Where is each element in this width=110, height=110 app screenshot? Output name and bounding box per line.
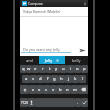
staticText: belly: [72, 58, 81, 63]
button[interactable]: Send: [76, 44, 88, 56]
button[interactable]: m: [71, 85, 78, 94]
button[interactable]: .: [75, 98, 81, 107]
staticText: Jelly: [45, 58, 53, 63]
button[interactable]: h: [58, 75, 65, 83]
button[interactable]: w: [26, 65, 32, 73]
button[interactable]: b: [57, 85, 64, 94]
button[interactable]: l: [79, 75, 86, 83]
button[interactable]: ?123: [20, 98, 28, 107]
staticText: and: [26, 58, 33, 63]
staticText: q: [22, 66, 25, 72]
staticText: n: [66, 87, 69, 93]
staticText: .: [77, 100, 79, 106]
staticText: r: [42, 66, 44, 72]
staticText: c: [45, 87, 48, 93]
staticText: v: [52, 87, 55, 93]
button[interactable]: c: [43, 85, 50, 94]
button[interactable]: j: [65, 75, 72, 83]
button[interactable]: and: [20, 56, 39, 64]
staticText: Vidya Ramesh (Mobile): [23, 9, 61, 14]
staticText: ?123: [21, 101, 28, 105]
staticText: e: [34, 66, 37, 72]
staticText: k: [74, 76, 77, 82]
staticText: y: [55, 66, 58, 72]
staticText: Compose: [28, 1, 44, 6]
button[interactable]: k: [72, 75, 79, 83]
staticText: a: [25, 76, 28, 82]
staticText: h: [60, 76, 63, 82]
staticText: b: [59, 87, 62, 93]
staticText: i: [70, 66, 72, 72]
staticText: z: [32, 87, 34, 93]
button[interactable]: a: [22, 75, 30, 83]
button[interactable]: s: [30, 75, 37, 83]
staticText: p: [83, 66, 86, 72]
staticText: s: [32, 76, 35, 82]
staticText: t: [49, 66, 51, 72]
staticText: m: [73, 87, 77, 93]
staticText: w: [27, 66, 31, 72]
button[interactable]: z: [29, 85, 36, 94]
staticText: g: [53, 76, 56, 82]
button[interactable]: Jelly: [39, 56, 65, 64]
staticText: l: [82, 76, 84, 82]
button[interactable]: Enter: [81, 98, 88, 107]
button[interactable]: v: [50, 85, 57, 94]
button[interactable]: Backspace: [78, 85, 88, 94]
staticText: j: [68, 76, 70, 82]
button[interactable]: d: [37, 75, 44, 83]
button[interactable]: t: [46, 65, 53, 73]
button[interactable]: e: [32, 65, 39, 73]
staticText: x: [38, 87, 41, 93]
button[interactable]: o: [74, 65, 81, 73]
button[interactable]: y: [53, 65, 60, 73]
button[interactable]: i: [67, 65, 74, 73]
staticText: Do you want any Jelly: [23, 47, 60, 52]
button[interactable]: n: [64, 85, 71, 94]
button[interactable]: Voice input: [28, 98, 35, 107]
staticText: f: [47, 76, 49, 82]
button[interactable]: belly: [65, 56, 88, 64]
button[interactable]: More options: [82, 0, 87, 7]
button[interactable]: r: [39, 65, 46, 73]
staticText: o: [76, 66, 79, 72]
button[interactable]: g: [51, 75, 58, 83]
button[interactable]: f: [44, 75, 51, 83]
button[interactable]: x: [36, 85, 43, 94]
button[interactable]: q: [20, 65, 26, 73]
staticText: d: [39, 76, 42, 82]
button[interactable]: u: [60, 65, 67, 73]
staticText: u: [62, 66, 65, 72]
button[interactable]: p: [81, 65, 88, 73]
button[interactable]: Shift: [20, 85, 29, 94]
button[interactable]: Vidya Ramesh (Mobile): [20, 7, 88, 16]
